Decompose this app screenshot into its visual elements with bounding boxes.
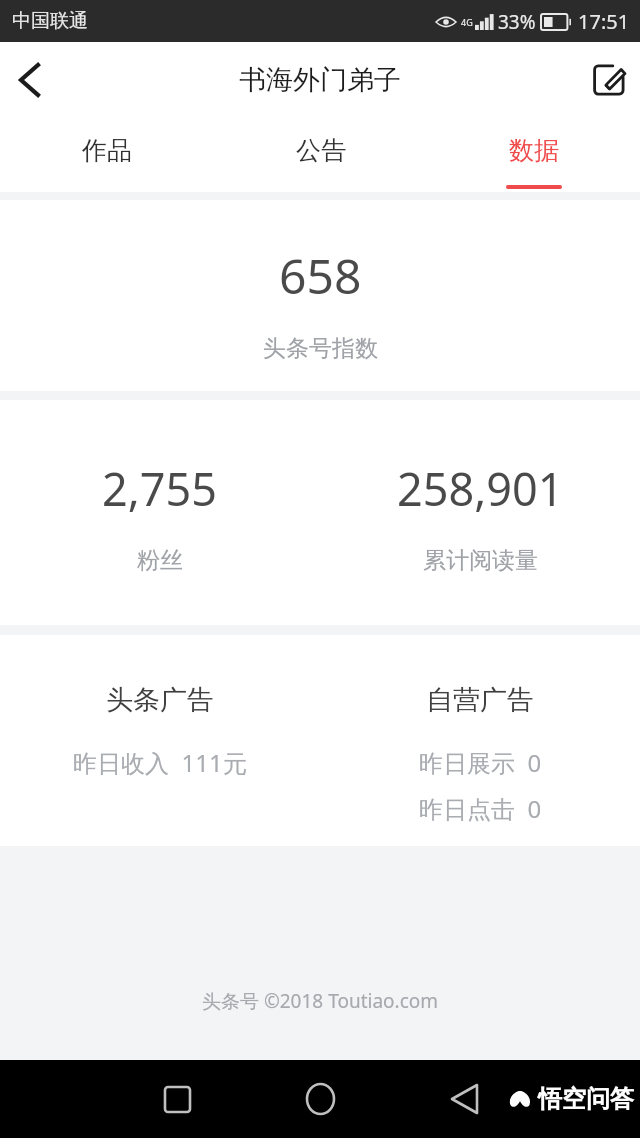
- staticText: 作品: [82, 135, 132, 166]
- button[interactable]: Edit: [578, 49, 640, 111]
- button[interactable]: Back: [0, 51, 58, 109]
- button[interactable]: 公告: [214, 118, 427, 192]
- button[interactable]: 2,755: [0, 400, 320, 625]
- staticText: 658: [279, 243, 362, 308]
- staticText: 累计阅读量: [423, 546, 538, 575]
- button[interactable]: 数据: [427, 118, 640, 192]
- button[interactable]: Back: [435, 1070, 493, 1128]
- button[interactable]: Recent apps: [148, 1070, 206, 1128]
- staticText: 2,755: [102, 458, 218, 519]
- staticText: 258,901: [397, 458, 564, 519]
- staticText: 17:51: [578, 8, 630, 35]
- button[interactable]: 头条广告: [0, 635, 320, 846]
- staticText: 中国联通: [12, 9, 88, 33]
- staticText: 33%: [498, 9, 536, 35]
- staticText: 头条号 ©2018 Toutiao.com: [202, 988, 439, 1014]
- button[interactable]: 658: [0, 200, 640, 391]
- staticText: 头条号指数: [263, 334, 378, 363]
- staticText: 悟空问答: [538, 1084, 634, 1114]
- staticText: 公告: [296, 135, 346, 166]
- staticText: 自营广告: [426, 683, 534, 717]
- button[interactable]: 作品: [0, 118, 214, 192]
- button[interactable]: 自营广告: [320, 635, 640, 846]
- staticText: 书海外门弟子: [239, 63, 401, 97]
- staticText: 昨日点击 0: [419, 792, 542, 825]
- button[interactable]: 258,901: [320, 400, 640, 625]
- staticText: 昨日收入 111元: [73, 746, 247, 779]
- button[interactable]: Home: [291, 1070, 349, 1128]
- staticText: 4G: [461, 16, 473, 28]
- staticText: 数据: [509, 135, 559, 166]
- staticText: 昨日展示 0: [419, 746, 542, 779]
- staticText: 头条广告: [106, 683, 214, 717]
- staticText: 粉丝: [137, 546, 183, 575]
